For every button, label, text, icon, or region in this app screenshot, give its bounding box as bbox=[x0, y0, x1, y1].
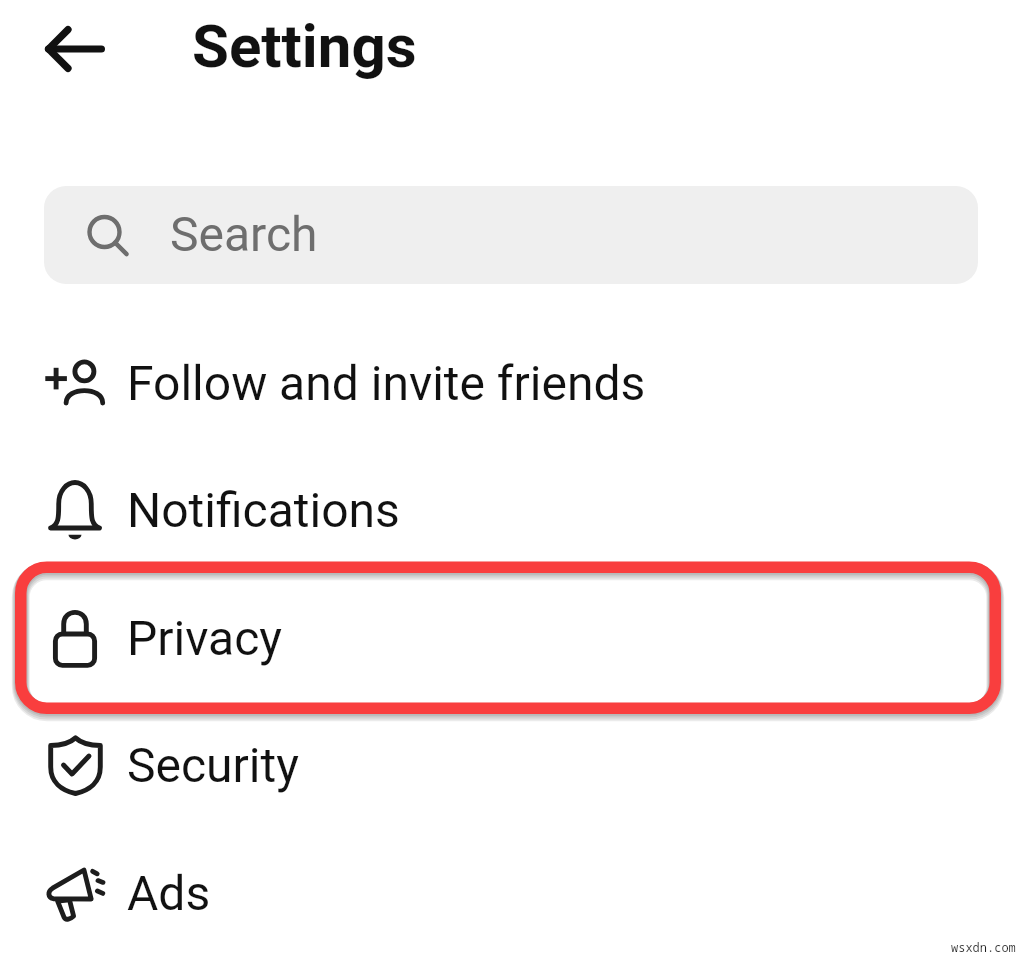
staticText: wsxdn.com bbox=[951, 939, 1016, 955]
staticText: Follow and invite friends bbox=[127, 355, 646, 411]
staticText: Security bbox=[127, 737, 299, 793]
button[interactable]: Notifications bbox=[0, 462, 1024, 590]
button[interactable]: Security bbox=[0, 717, 1024, 845]
staticText: Privacy bbox=[127, 610, 283, 666]
button[interactable]: Privacy bbox=[0, 590, 1024, 718]
staticText: Ads bbox=[127, 865, 211, 921]
staticText: Search bbox=[170, 206, 318, 262]
staticText: Notifications bbox=[127, 482, 400, 538]
button[interactable]: Ads bbox=[0, 845, 1024, 958]
button[interactable]: Back bbox=[24, 10, 126, 88]
button[interactable]: Follow and invite friends bbox=[0, 335, 1024, 463]
button[interactable]: Search bbox=[44, 186, 978, 284]
staticText: Settings bbox=[192, 11, 417, 81]
